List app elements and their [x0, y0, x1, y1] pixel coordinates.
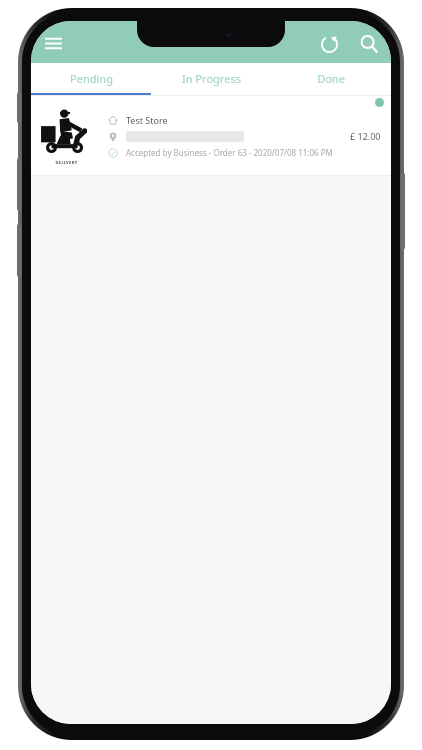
button[interactable]: Refresh: [313, 28, 345, 60]
button[interactable]: DELIVERY: [31, 96, 391, 176]
staticText: Pending: [70, 71, 113, 86]
staticText: DELIVERY: [55, 160, 78, 165]
staticText: £ 12.00: [350, 130, 381, 142]
staticText: Test Store: [126, 114, 168, 126]
button[interactable]: Search: [353, 28, 385, 60]
button[interactable]: Pending: [31, 63, 151, 93]
staticText: Accepted by Business - Order 63 - 2020/0…: [126, 147, 333, 158]
button[interactable]: Open navigation menu: [37, 27, 69, 59]
button[interactable]: In Progress: [151, 63, 271, 93]
staticText: In Progress: [182, 71, 241, 86]
button[interactable]: Done: [271, 63, 391, 93]
staticText: Done: [317, 71, 345, 86]
